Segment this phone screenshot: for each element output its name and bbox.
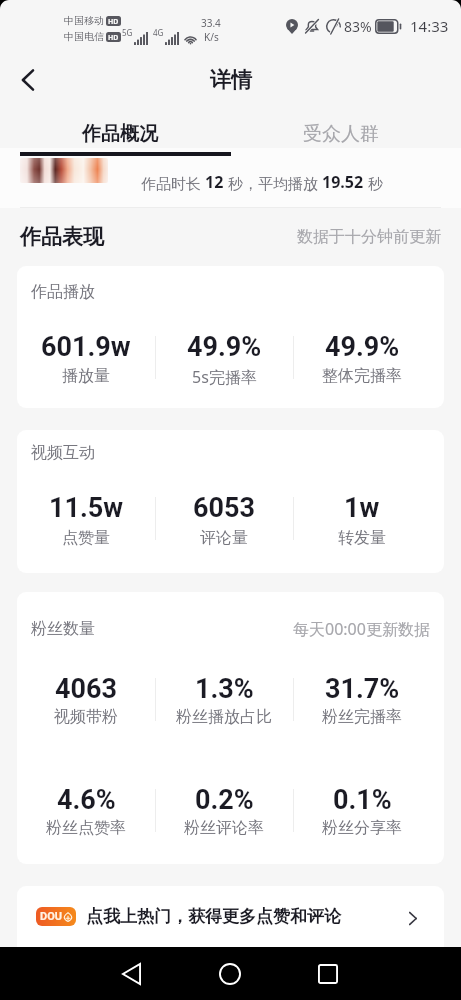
- staticText: 播放量: [62, 366, 110, 386]
- staticText: 秒，平均播放: [224, 173, 322, 193]
- staticText: 中国移动: [64, 14, 104, 27]
- staticText: 33.4: [201, 16, 221, 30]
- button[interactable]: 作品概况: [62, 115, 178, 152]
- staticText: 11.5w: [49, 492, 124, 524]
- staticText: 中国电信: [64, 30, 104, 43]
- staticText: 数据于十分钟前更新: [297, 227, 441, 247]
- staticText: HD: [108, 17, 119, 25]
- button[interactable]: Recent apps: [302, 948, 354, 1000]
- button[interactable]: DOU: [17, 886, 444, 947]
- staticText: 6053: [193, 492, 255, 524]
- staticText: 0.1%: [333, 784, 392, 816]
- button[interactable]: Back: [6, 58, 50, 102]
- staticText: 作品概况: [82, 122, 158, 146]
- staticText: DOU: [40, 910, 62, 923]
- staticText: 49.9%: [187, 331, 262, 363]
- button[interactable]: Home: [204, 948, 256, 1000]
- staticText: 5G: [122, 27, 133, 38]
- staticText: 12: [205, 171, 224, 193]
- staticText: 粉丝分享率: [322, 818, 402, 838]
- staticText: 0.2%: [195, 784, 254, 816]
- staticText: 详情: [210, 67, 252, 93]
- staticText: 作品表现: [20, 224, 104, 250]
- staticText: 整体完播率: [322, 366, 402, 386]
- staticText: 粉丝数量: [31, 619, 95, 639]
- staticText: 19.52: [322, 171, 364, 193]
- staticText: 粉丝完播率: [322, 707, 402, 727]
- staticText: 粉丝点赞率: [46, 818, 126, 838]
- staticText: 粉丝评论率: [184, 818, 264, 838]
- staticText: 601.9w: [41, 331, 131, 363]
- staticText: 4063: [55, 673, 117, 705]
- staticText: 49.9%: [325, 331, 400, 363]
- staticText: 转发量: [338, 528, 386, 548]
- staticText: 1.3%: [195, 673, 254, 705]
- staticText: 受众人群: [303, 122, 379, 146]
- staticText: 14:33: [410, 16, 449, 36]
- staticText: 4.6%: [57, 784, 116, 816]
- staticText: 作品播放: [31, 282, 95, 302]
- staticText: 粉丝播放占比: [176, 707, 272, 727]
- staticText: 1w: [344, 492, 380, 524]
- staticText: 视频互动: [31, 443, 95, 463]
- staticText: 秒: [364, 173, 383, 193]
- staticText: 评论量: [200, 528, 248, 548]
- button[interactable]: Back: [105, 948, 157, 1000]
- staticText: 每天00:00更新数据: [293, 618, 430, 640]
- staticText: 31.7%: [325, 673, 400, 705]
- staticText: HD: [108, 33, 119, 41]
- button[interactable]: 受众人群: [283, 115, 399, 152]
- staticText: 点赞量: [62, 528, 110, 548]
- staticText: 83%: [344, 17, 372, 36]
- staticText: 作品时长: [141, 173, 205, 193]
- staticText: 视频带粉: [54, 707, 118, 727]
- staticText: 4G: [153, 27, 164, 38]
- staticText: 点我上热门，获得更多点赞和评论: [86, 906, 341, 927]
- staticText: K/s: [204, 30, 219, 44]
- staticText: 5s完播率: [192, 366, 257, 388]
